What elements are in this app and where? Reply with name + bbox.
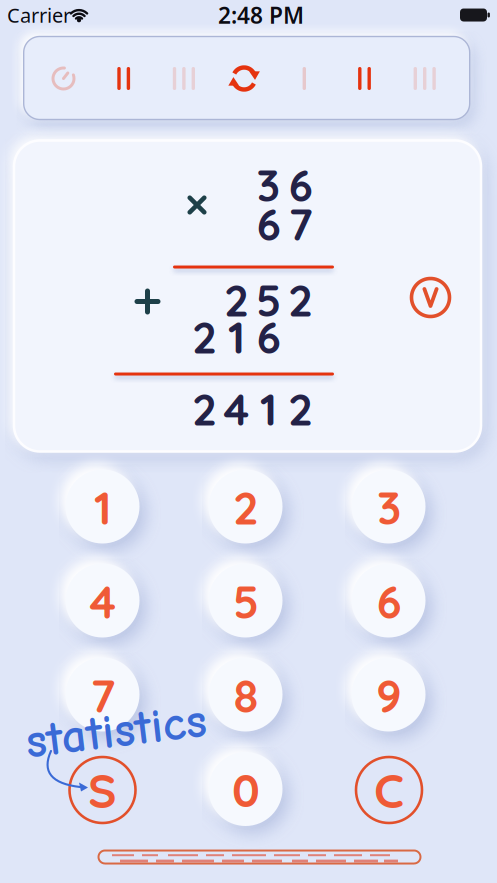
staticText: 2 [192,381,217,436]
staticText: 2 [224,272,249,327]
staticText: 4 [223,381,249,436]
staticText: statistics [25,703,207,759]
staticText: S [88,760,117,820]
button[interactable]: Three digits [162,56,206,100]
button[interactable]: Statistics [62,750,142,830]
button[interactable]: 1 [62,466,144,548]
button[interactable]: One digit [282,56,326,100]
button[interactable]: 3 [348,466,430,548]
button[interactable]: Clear [349,750,429,830]
staticText: 4 [89,573,116,630]
button[interactable]: 9 [348,654,430,736]
button[interactable]: 4 [62,560,144,642]
staticText: 2 [288,272,313,327]
button[interactable]: 7 [62,654,144,736]
staticText: 2 [233,479,259,536]
button[interactable]: New problem [222,56,266,100]
staticText: 6 [288,157,312,212]
button[interactable]: Pause [102,56,146,100]
staticText: 6 [256,309,280,364]
button[interactable]: Three digits [403,56,447,100]
staticText: 2 [288,381,313,436]
button[interactable]: 2 [205,466,287,548]
button[interactable]: Two digits [342,56,386,100]
staticText: 9 [376,667,402,724]
button[interactable]: Check answer [407,274,453,320]
staticText: 5 [256,272,281,327]
staticText: 1 [228,309,245,364]
staticText: 1 [260,381,277,436]
staticText: 7 [90,667,115,724]
staticText: 0 [232,762,260,818]
button[interactable]: 0 [205,749,287,831]
staticText: 2 [192,309,217,364]
staticText: C [374,760,404,820]
staticText: 6 [376,573,401,630]
staticText: 3 [377,479,401,536]
staticText: 2:48 PM [218,0,304,30]
staticText: 7 [288,196,312,251]
staticText: 8 [233,667,258,724]
staticText: 1 [94,479,112,536]
staticText: 3 [256,157,280,212]
staticText: Carrier [7,2,71,28]
button[interactable]: 6 [348,560,430,642]
button[interactable]: 5 [205,560,287,642]
button[interactable]: Timer [41,56,85,100]
button[interactable]: 8 [205,654,287,736]
staticText: 5 [233,573,259,630]
staticText: 6 [256,196,280,251]
